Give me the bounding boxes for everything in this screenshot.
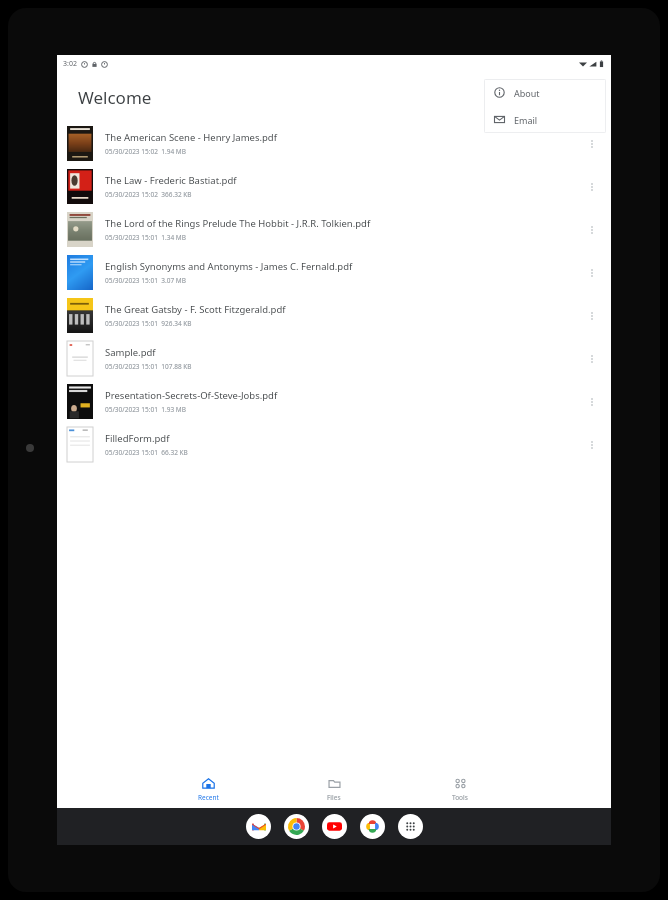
staticText: 05/30/2023 15:01 1.34 MB (105, 233, 186, 242)
button[interactable]: The American Scene - Henry James.pdf (57, 122, 611, 165)
button[interactable]: FilledForm.pdf (57, 423, 611, 466)
button[interactable]: Tools (432, 770, 488, 808)
button[interactable]: More options (581, 219, 603, 241)
button[interactable]: More options (581, 348, 603, 370)
button[interactable]: App (284, 814, 309, 839)
staticText: Sample.pdf (105, 346, 156, 359)
staticText: 05/30/2023 15:02 1.94 MB (105, 147, 186, 156)
button[interactable]: App (360, 814, 385, 839)
button[interactable]: More options (581, 176, 603, 198)
button[interactable]: More options (581, 434, 603, 456)
button[interactable]: More options (581, 262, 603, 284)
staticText: 05/30/2023 15:01 107.88 KB (105, 362, 192, 371)
staticText: 05/30/2023 15:01 66.32 KB (105, 448, 188, 457)
staticText: Tools (452, 793, 468, 802)
staticText: 05/30/2023 15:02 366.32 KB (105, 190, 192, 199)
button[interactable]: English Synonyms and Antonyms - James C.… (57, 251, 611, 294)
button[interactable]: Presentation-Secrets-Of-Steve-Jobs.pdf (57, 380, 611, 423)
button[interactable]: About (484, 79, 606, 106)
button[interactable]: App (246, 814, 271, 839)
staticText: Recent (198, 793, 219, 802)
button[interactable]: Email (484, 106, 606, 133)
staticText: English Synonyms and Antonyms - James C.… (105, 260, 353, 273)
button[interactable]: App (398, 814, 423, 839)
button[interactable]: More options (581, 391, 603, 413)
staticText: The Great Gatsby - F. Scott Fitzgerald.p… (105, 303, 286, 316)
button[interactable]: The Great Gatsby - F. Scott Fitzgerald.p… (57, 294, 611, 337)
button[interactable]: Sample.pdf (57, 337, 611, 380)
button[interactable]: Recent (180, 770, 236, 808)
staticText: 3:02 (63, 59, 77, 69)
staticText: The Law - Frederic Bastiat.pdf (105, 174, 237, 187)
staticText: About (514, 87, 540, 99)
staticText: 05/30/2023 15:01 926.34 KB (105, 319, 192, 328)
staticText: Files (327, 793, 341, 802)
button[interactable]: The Law - Frederic Bastiat.pdf (57, 165, 611, 208)
button[interactable]: More options (581, 133, 603, 155)
button[interactable]: More options (581, 305, 603, 327)
button[interactable]: Files (306, 770, 362, 808)
staticText: FilledForm.pdf (105, 432, 170, 445)
button[interactable]: The Lord of the Rings Prelude The Hobbit… (57, 208, 611, 251)
staticText: The American Scene - Henry James.pdf (105, 131, 277, 144)
staticText: The Lord of the Rings Prelude The Hobbit… (105, 217, 371, 230)
staticText: 05/30/2023 15:01 1.93 MB (105, 405, 186, 414)
staticText: Welcome (78, 86, 152, 109)
button[interactable]: App (322, 814, 347, 839)
staticText: Presentation-Secrets-Of-Steve-Jobs.pdf (105, 389, 278, 402)
staticText: Email (514, 114, 538, 126)
staticText: 05/30/2023 15:01 3.07 MB (105, 276, 186, 285)
